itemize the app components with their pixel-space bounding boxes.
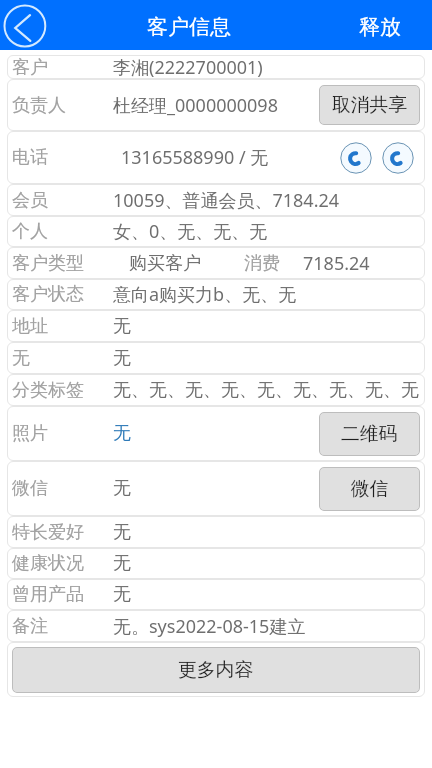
button[interactable]: 曾用产品 (7, 579, 425, 610)
staticText: 无 (113, 583, 131, 606)
staticText: 7185.24 (303, 251, 370, 276)
staticText: 无 (113, 315, 131, 338)
staticText: 照片 (12, 422, 113, 445)
staticText: 10059、普通会员、7184.24 (113, 188, 340, 213)
button[interactable]: 个人 (7, 216, 425, 247)
staticText: 意向a购买力b、无、无 (113, 282, 297, 307)
staticText: 客户信息 (147, 14, 231, 40)
button[interactable]: 健康状况 (7, 548, 425, 579)
staticText: 特长爱好 (12, 521, 113, 544)
button[interactable]: 取消共享 (319, 85, 420, 125)
button[interactable]: 照片 (7, 406, 425, 461)
staticText: 释放 (359, 14, 401, 40)
staticText: 客户类型 (12, 252, 113, 275)
button[interactable]: 微信 (319, 467, 420, 511)
staticText: 无、无、无、无、无、无、无、无、无 (113, 379, 419, 402)
button[interactable]: Call (340, 142, 372, 174)
button[interactable]: 客户类型 (7, 247, 425, 279)
staticText: 无 (113, 422, 131, 445)
staticText: 无 (113, 347, 131, 370)
staticText: 无 (12, 347, 113, 370)
button[interactable]: 二维码 (319, 412, 420, 456)
staticText: 健康状况 (12, 552, 113, 575)
button[interactable]: 无 (7, 342, 425, 374)
staticText: 微信 (351, 477, 389, 501)
staticText: 二维码 (341, 422, 398, 446)
staticText: 无 (113, 552, 131, 575)
staticText: 分类标签 (12, 379, 113, 402)
button[interactable]: 释放 (359, 14, 401, 40)
staticText: 更多内容 (178, 658, 254, 682)
staticText: 杜经理_0000000098 (113, 93, 278, 118)
button[interactable]: 分类标签 (7, 374, 425, 406)
staticText: 13165588990 / 无 (121, 145, 269, 170)
button[interactable]: 地址 (7, 310, 425, 342)
staticText: 李湘(2222700001) (113, 55, 263, 79)
button[interactable]: 电话 (7, 131, 425, 184)
staticText: 客户 (12, 56, 113, 79)
button[interactable]: 客户 (7, 55, 425, 79)
button[interactable]: 备注 (7, 610, 425, 642)
staticText: 个人 (12, 220, 113, 243)
staticText: 地址 (12, 315, 113, 338)
staticText: 取消共享 (332, 93, 408, 117)
button[interactable]: 负责人 (7, 79, 425, 131)
staticText: 备注 (12, 615, 113, 638)
button[interactable]: 微信 (7, 461, 425, 516)
staticText: 负责人 (12, 94, 113, 117)
staticText: 女、0、无、无、无 (113, 219, 268, 244)
staticText: 客户状态 (12, 283, 113, 306)
button[interactable]: 会员 (7, 184, 425, 216)
button[interactable]: 特长爱好 (7, 516, 425, 548)
staticText: 无。sys2022-08-15建立 (113, 614, 306, 639)
staticText: 购买客户 (129, 252, 201, 275)
button[interactable]: 更多内容 (7, 642, 425, 697)
staticText: 曾用产品 (12, 583, 113, 606)
button[interactable]: Back (0, 0, 50, 50)
staticText: 无 (113, 477, 131, 500)
staticText: 微信 (12, 477, 113, 500)
button[interactable]: 客户状态 (7, 279, 425, 310)
button[interactable]: Call (382, 142, 414, 174)
button[interactable]: 更多内容 (12, 647, 420, 693)
staticText: 无 (113, 521, 131, 544)
staticText: 会员 (12, 189, 113, 212)
staticText: 消费 (244, 252, 280, 275)
staticText: 电话 (12, 146, 113, 169)
